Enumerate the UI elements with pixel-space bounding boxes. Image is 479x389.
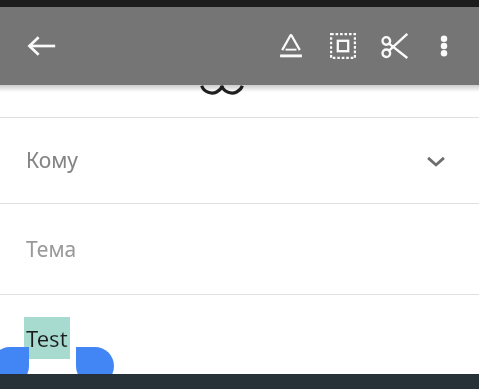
button[interactable]: Формат текста [265, 20, 317, 72]
staticText: Кому [26, 146, 78, 175]
staticText: Test [26, 323, 68, 353]
other: Показать копию и скрытую копию [419, 144, 453, 178]
button[interactable]: Тема [0, 204, 479, 294]
button[interactable]: Test [0, 295, 479, 389]
button[interactable]: Выбрать все [317, 20, 369, 72]
button[interactable]: Назад [18, 22, 66, 70]
button[interactable]: Ещё [421, 23, 467, 69]
button[interactable]: Кому [0, 118, 479, 203]
staticText: Тема [26, 235, 77, 264]
button[interactable]: Вырезать [369, 20, 421, 72]
